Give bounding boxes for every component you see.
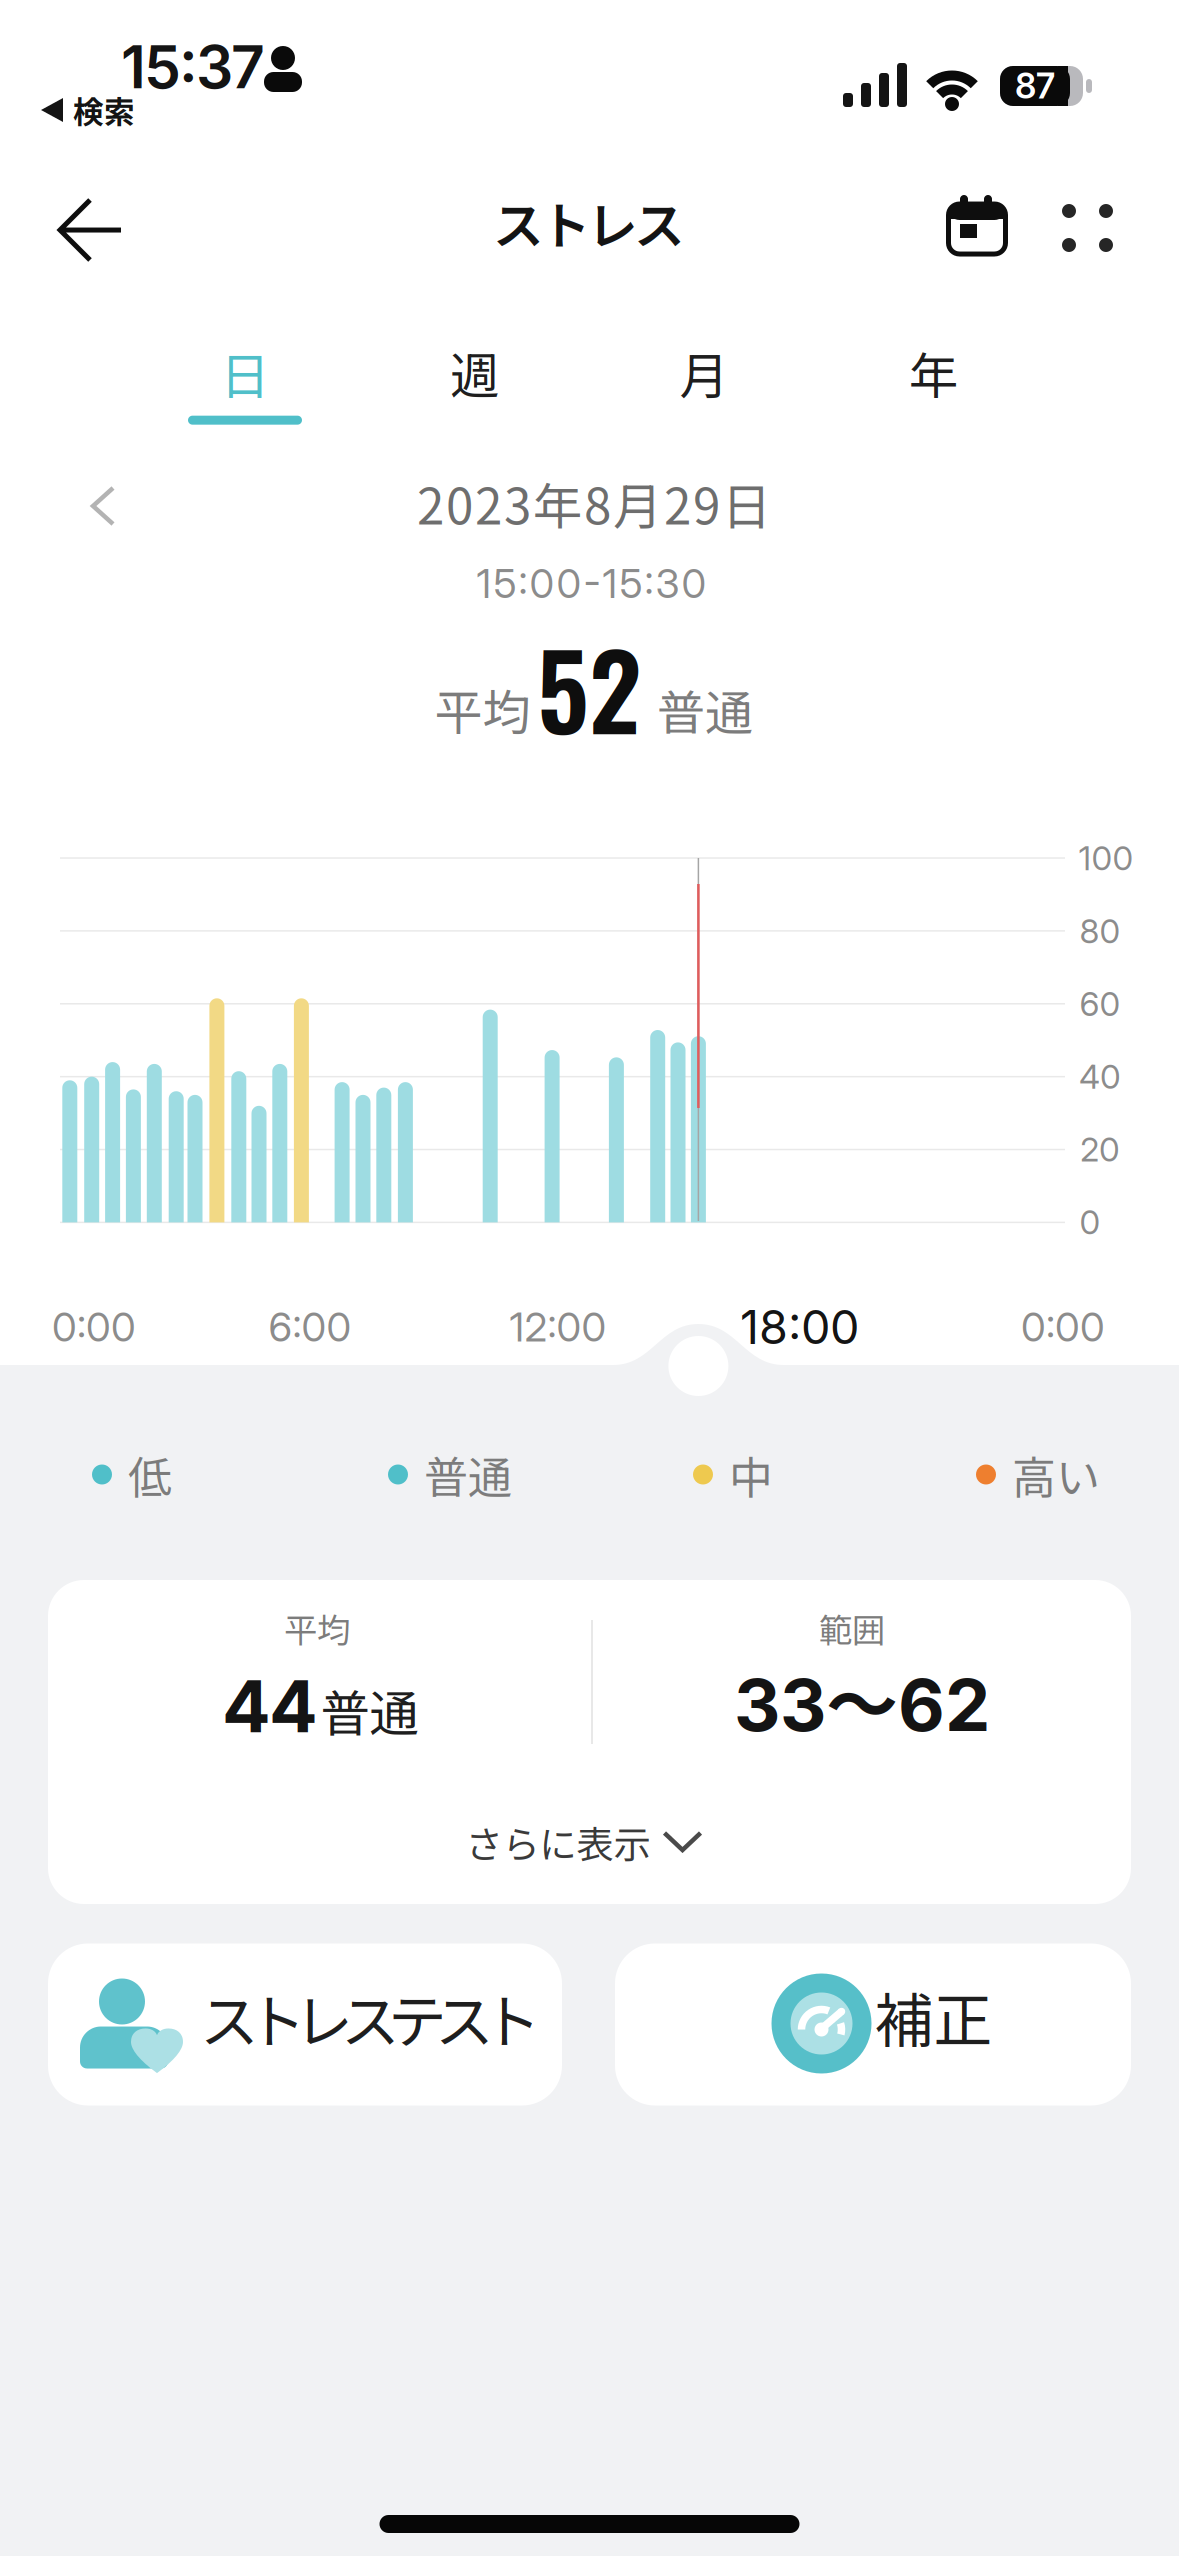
staticText: ストレステスト bbox=[200, 1975, 541, 2060]
button[interactable]: 検索に戻る bbox=[41, 88, 135, 132]
staticText: 普通 bbox=[657, 675, 753, 744]
staticText: 60 bbox=[1079, 984, 1120, 1024]
button[interactable]: さらに表示 bbox=[465, 1815, 702, 1869]
button[interactable]: 年 bbox=[876, 337, 990, 425]
staticText: 平均 bbox=[284, 1604, 350, 1652]
staticText: 6:00 bbox=[268, 1303, 351, 1351]
staticText: 18:00 bbox=[740, 1299, 859, 1355]
staticText: 普通 bbox=[320, 1674, 418, 1746]
staticText: 33〜62 bbox=[734, 1649, 990, 1750]
staticText: 日 bbox=[220, 337, 269, 408]
staticText: 普通 bbox=[424, 1443, 512, 1506]
button[interactable]: 月 bbox=[647, 337, 761, 425]
staticText: 高い bbox=[1012, 1443, 1100, 1506]
button[interactable]: 週 bbox=[417, 337, 531, 425]
staticText: さらに表示 bbox=[465, 1815, 650, 1869]
button[interactable]: その他 bbox=[1057, 201, 1117, 255]
staticText: 月 bbox=[679, 337, 728, 408]
staticText: 低 bbox=[128, 1443, 172, 1506]
button[interactable]: 前日 bbox=[91, 486, 117, 528]
staticText: 15:37 bbox=[121, 31, 265, 102]
staticText: 0 bbox=[1079, 1202, 1100, 1242]
staticText: 0:00 bbox=[52, 1303, 136, 1351]
staticText: 範囲 bbox=[819, 1604, 885, 1652]
staticText: 87 bbox=[1015, 65, 1055, 107]
staticText: 平均 bbox=[434, 674, 530, 744]
staticText: 補正 bbox=[874, 1974, 992, 2059]
staticText: 52 bbox=[537, 611, 641, 764]
staticText: 中 bbox=[729, 1443, 773, 1506]
staticText: 44 bbox=[222, 1662, 318, 1749]
button[interactable]: 戻る bbox=[57, 197, 123, 263]
staticText: 100 bbox=[1078, 838, 1133, 878]
staticText: 年 bbox=[909, 337, 958, 408]
staticText: ストレス bbox=[493, 186, 685, 259]
button[interactable]: ストレステスト bbox=[48, 1943, 562, 2105]
button[interactable]: カレンダー bbox=[945, 195, 1007, 261]
staticText: 0:00 bbox=[1021, 1303, 1105, 1351]
staticText: 15:00-15:30 bbox=[476, 559, 706, 608]
staticText: 80 bbox=[1079, 911, 1120, 951]
staticText: 12:00 bbox=[509, 1303, 606, 1351]
staticText: 40 bbox=[1079, 1056, 1121, 1097]
staticText: 検索 bbox=[73, 88, 135, 132]
staticText: 週 bbox=[450, 337, 499, 408]
button[interactable]: 日 bbox=[188, 337, 302, 425]
staticText: 2023年8月29日 bbox=[417, 467, 771, 539]
button[interactable]: 補正 bbox=[615, 1943, 1131, 2105]
staticText: 20 bbox=[1080, 1129, 1120, 1169]
